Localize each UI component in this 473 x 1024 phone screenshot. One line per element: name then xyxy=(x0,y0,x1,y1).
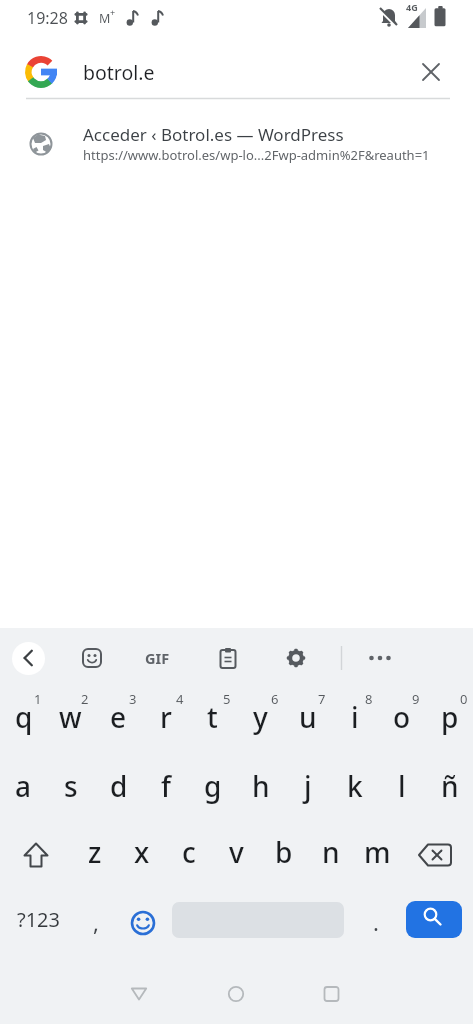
staticText: o xyxy=(393,698,411,736)
button[interactable]: k xyxy=(331,756,378,816)
staticText: 4 xyxy=(176,690,184,707)
button[interactable]: b xyxy=(260,822,307,882)
staticText: 7 xyxy=(318,690,326,707)
button[interactable]: d xyxy=(95,756,142,816)
button[interactable] xyxy=(280,642,312,674)
staticText: w xyxy=(59,698,82,736)
button[interactable]: ?123 xyxy=(8,899,68,939)
staticText: 3 xyxy=(129,690,137,707)
button[interactable]: , xyxy=(78,901,114,943)
button[interactable]: e xyxy=(95,686,142,748)
button[interactable]: . xyxy=(358,901,394,943)
button[interactable]: r xyxy=(142,686,189,748)
button[interactable]: m xyxy=(354,822,401,882)
button[interactable]: x xyxy=(118,822,165,882)
staticText: g xyxy=(204,767,222,805)
button[interactable]: f xyxy=(142,756,189,816)
button[interactable]: c xyxy=(165,822,212,882)
staticText: botrol.e xyxy=(83,59,155,86)
staticText: s xyxy=(64,767,78,805)
staticText: 5 xyxy=(223,690,231,707)
staticText: + xyxy=(110,6,116,18)
button[interactable] xyxy=(76,642,108,674)
button[interactable] xyxy=(414,827,462,883)
button[interactable] xyxy=(315,978,347,1010)
staticText: . xyxy=(373,907,379,937)
staticText: f xyxy=(161,767,171,805)
staticText: t xyxy=(207,698,218,736)
staticText: d xyxy=(110,767,128,805)
staticText: ?123 xyxy=(17,906,60,933)
staticText: 19:28 xyxy=(27,7,68,29)
button[interactable]: q xyxy=(0,686,47,748)
button[interactable]: t xyxy=(189,686,236,748)
button[interactable] xyxy=(127,907,159,939)
staticText: m xyxy=(364,833,391,871)
staticText: u xyxy=(299,698,317,736)
button[interactable] xyxy=(413,54,449,90)
staticText: https://www.botrol.es/wp-lo...2Fwp-admin… xyxy=(83,146,430,164)
button[interactable]: z xyxy=(71,822,118,882)
button[interactable]: y xyxy=(237,686,284,748)
staticText: y xyxy=(253,698,268,736)
button[interactable]: i xyxy=(331,686,378,748)
staticText: ñ xyxy=(441,767,459,805)
button[interactable]: o xyxy=(378,686,425,748)
staticText: x xyxy=(134,833,150,871)
staticText: z xyxy=(88,833,102,871)
staticText: 6 xyxy=(271,690,279,707)
staticText: n xyxy=(322,833,340,871)
button[interactable]: p xyxy=(426,686,473,748)
button[interactable] xyxy=(123,978,155,1010)
staticText: , xyxy=(93,907,99,937)
staticText: a xyxy=(15,767,32,805)
staticText: 1 xyxy=(34,690,42,707)
button[interactable] xyxy=(12,827,58,883)
button[interactable] xyxy=(0,110,473,172)
staticText: k xyxy=(347,767,363,805)
staticText: b xyxy=(275,833,293,871)
button[interactable]: g xyxy=(189,756,236,816)
button[interactable]: w xyxy=(47,686,94,748)
button[interactable] xyxy=(66,48,406,96)
button[interactable] xyxy=(12,642,45,675)
staticText: e xyxy=(110,698,127,736)
button[interactable]: l xyxy=(378,756,425,816)
staticText: q xyxy=(15,698,33,736)
button[interactable]: j xyxy=(284,756,331,816)
staticText: 9 xyxy=(412,690,420,707)
staticText: Acceder ‹ Botrol.es — WordPress xyxy=(83,123,344,145)
button[interactable] xyxy=(364,642,396,674)
button[interactable]: ñ xyxy=(426,756,473,816)
staticText: 8 xyxy=(365,690,373,707)
button[interactable]: GIF xyxy=(139,644,175,672)
staticText: M xyxy=(99,10,111,27)
button[interactable]: u xyxy=(284,686,331,748)
button[interactable]: s xyxy=(47,756,94,816)
staticText: 0 xyxy=(460,690,468,707)
button[interactable] xyxy=(220,978,252,1010)
staticText: j xyxy=(304,767,312,805)
button[interactable] xyxy=(212,642,244,674)
button[interactable]: v xyxy=(213,822,260,882)
staticText: h xyxy=(252,767,270,805)
staticText: 2 xyxy=(81,690,89,707)
staticText: GIF xyxy=(145,648,170,668)
button[interactable]: h xyxy=(237,756,284,816)
staticText: r xyxy=(160,698,172,736)
button[interactable]: n xyxy=(307,822,354,882)
staticText: c xyxy=(182,833,196,871)
staticText: p xyxy=(441,698,459,736)
staticText: v xyxy=(229,833,244,871)
staticText: 4G xyxy=(406,1,418,13)
button[interactable]: a xyxy=(0,756,47,816)
button[interactable] xyxy=(406,901,462,938)
staticText: l xyxy=(398,767,406,805)
staticText: i xyxy=(351,698,359,736)
